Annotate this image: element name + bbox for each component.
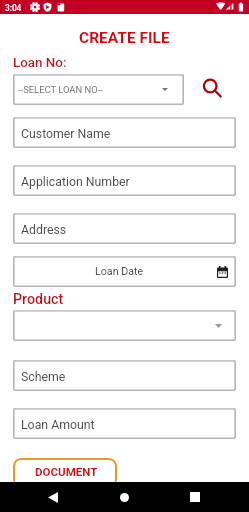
button[interactable]: Customer Name [13,117,236,148]
staticText: CREATE FILE [79,29,170,47]
staticText: Application Number [21,175,130,189]
staticText: Customer Name [21,127,111,141]
staticText: --SELECT LOAN NO-- [18,84,103,95]
staticText: 3:04 [5,3,22,13]
staticText: Loan Amount [21,418,95,432]
button[interactable]: Application Number [13,165,236,196]
button[interactable]: Home [109,482,139,512]
staticText: Loan Date [95,265,144,278]
button[interactable]: Back [38,482,68,512]
button[interactable]: --SELECT LOAN NO-- [13,74,184,105]
staticText: DOCUMENT [35,465,98,479]
button[interactable]: Recent apps [180,482,210,512]
button[interactable]: Scheme [13,360,236,391]
staticText: Address [21,223,67,237]
button[interactable] [13,310,236,341]
staticText: Loan No: [13,55,67,71]
button[interactable]: Loan Date [13,256,236,287]
button[interactable]: Address [13,213,236,244]
staticText: Product [13,291,64,308]
button[interactable]: Loan Amount [13,408,236,439]
button[interactable]: Search [194,70,226,102]
button[interactable]: DOCUMENT [13,458,117,488]
staticText: Scheme [21,370,66,384]
